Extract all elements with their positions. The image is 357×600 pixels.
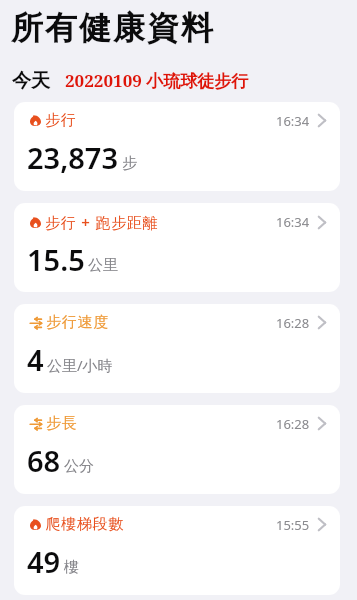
staticText: 16:28 [276, 314, 310, 332]
staticText: 4 [27, 340, 44, 379]
staticText: 23,873 [27, 138, 119, 177]
staticText: 步行 + 跑步距離 [45, 212, 159, 232]
staticText: 公里 [88, 256, 118, 275]
staticText: 所有健康資料 [10, 8, 214, 48]
staticText: 步長 [46, 414, 78, 433]
staticText: 16:28 [276, 415, 310, 433]
staticText: 步行速度 [46, 313, 110, 332]
button[interactable]: 爬樓梯段數 [14, 506, 340, 595]
button[interactable]: 步行速度 [14, 304, 340, 393]
button[interactable]: 步長 [14, 405, 340, 494]
staticText: 公分 [64, 457, 94, 476]
staticText: 公里/小時 [47, 355, 113, 375]
staticText: 步行 [45, 111, 77, 130]
staticText: 今天 [12, 69, 50, 93]
staticText: 49 [27, 542, 61, 581]
staticText: 15:55 [276, 516, 310, 534]
staticText: 16:34 [276, 112, 310, 130]
staticText: 16:34 [276, 213, 310, 231]
staticText: 步 [122, 154, 137, 173]
staticText: 68 [27, 441, 61, 480]
staticText: 爬樓梯段數 [45, 515, 124, 534]
staticText: 樓 [64, 558, 79, 577]
staticText: 15.5 [27, 240, 85, 279]
staticText: 20220109 小琉球徒步行 [65, 69, 249, 92]
button[interactable]: 步行 [14, 102, 340, 191]
button[interactable]: 步行 + 跑步距離 [14, 203, 340, 292]
